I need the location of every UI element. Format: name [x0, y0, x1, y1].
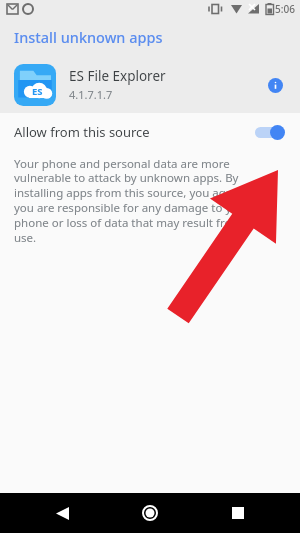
button[interactable]: Allow from this source [0, 113, 300, 151]
staticText: Your phone and personal data are more vu… [14, 156, 286, 246]
staticText: Install unknown apps [14, 27, 163, 47]
staticText: ES [32, 85, 43, 98]
staticText: ES File Explorer [69, 67, 166, 85]
button[interactable]: ES [0, 56, 300, 113]
button[interactable]: Allow from this source toggle [253, 122, 287, 142]
staticText: Allow from this source [14, 123, 253, 141]
button[interactable]: App info [262, 72, 288, 98]
staticText: 4.1.7.1.7 [69, 87, 113, 102]
button[interactable]: Home [135, 498, 165, 528]
staticText: 5:06 [275, 2, 295, 16]
button[interactable]: Back [48, 499, 76, 527]
button[interactable]: Recent apps [224, 499, 252, 527]
